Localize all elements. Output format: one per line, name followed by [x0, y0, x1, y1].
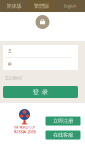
staticText: FIFA WORLD CUP [13, 126, 35, 129]
button[interactable]: English [55, 0, 85, 12]
button[interactable]: 登 录 [3, 86, 78, 98]
staticText: 立即注册 [53, 118, 73, 124]
staticText: 在线客服 [53, 132, 73, 138]
button[interactable]: 在线客服 [45, 130, 80, 139]
staticText: English [64, 3, 76, 9]
staticText: 登 录 [32, 88, 48, 96]
button[interactable]: 简体版 [0, 0, 28, 12]
staticText: RUSSIA 2018 [13, 129, 35, 134]
button[interactable]: 忘记密码? [5, 75, 23, 81]
button[interactable]: 立即注册 [45, 116, 80, 125]
button[interactable]: 繁體版 [28, 0, 55, 12]
staticText: 简体版 [6, 3, 21, 9]
staticText: 繁體版 [34, 3, 49, 9]
staticText: 忘记密码? [5, 75, 23, 81]
